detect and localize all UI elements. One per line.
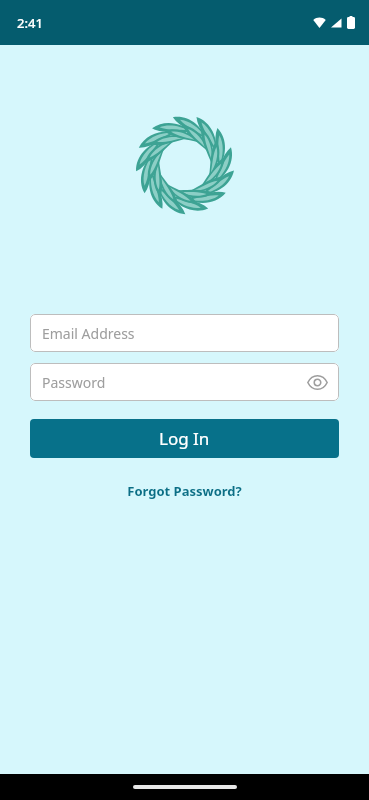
- staticText: Log In: [159, 427, 210, 450]
- button[interactable]: Show password: [305, 370, 329, 394]
- staticText: Forgot Password?: [127, 482, 242, 500]
- button[interactable]: Password: [30, 363, 339, 401]
- staticText: Password: [42, 373, 305, 392]
- staticText: 2:41: [17, 14, 43, 32]
- staticText: Email Address: [42, 324, 135, 343]
- button[interactable]: Email Address: [30, 314, 339, 352]
- button[interactable]: Forgot Password?: [117, 478, 252, 504]
- button[interactable]: Log In: [30, 419, 339, 458]
